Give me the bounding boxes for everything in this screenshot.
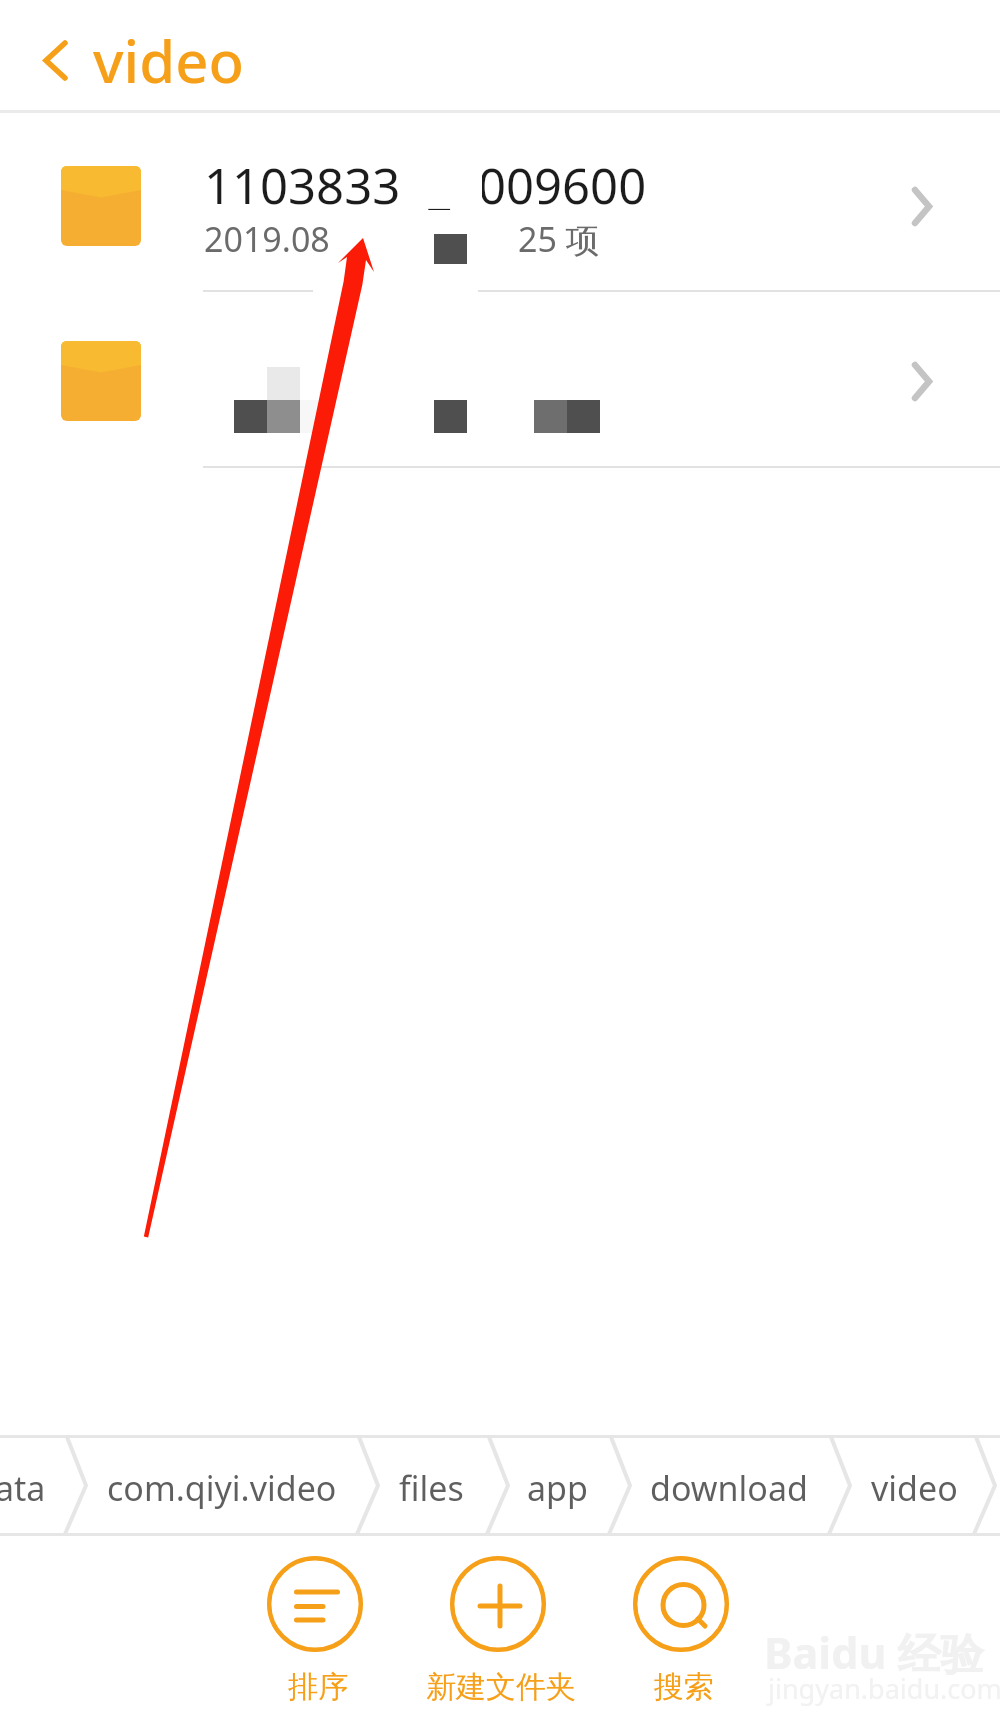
other: Back: [43, 40, 68, 81]
staticText: 排序: [288, 1668, 348, 1706]
staticText: jingyan.baidu.com: [768, 1670, 1000, 1707]
button[interactable]: 排序: [215, 1545, 415, 1706]
button[interactable]: [0, 113, 1000, 292]
staticText: 2019.08.: [204, 216, 339, 262]
button[interactable]: 新建文件夹: [398, 1545, 598, 1706]
button[interactable]: files: [358, 1435, 508, 1536]
button[interactable]: Back: [0, 0, 1000, 112]
staticText: files: [399, 1465, 464, 1511]
other: Open folder: [911, 186, 941, 227]
staticText: 搜索: [654, 1668, 714, 1706]
staticText: 新建文件夹: [426, 1668, 576, 1706]
staticText: ata: [0, 1465, 46, 1511]
staticText: com.qiyi.video: [107, 1465, 337, 1511]
button[interactable]: app: [488, 1435, 630, 1536]
staticText: video: [93, 21, 244, 100]
staticText: 25 项: [518, 216, 600, 262]
staticText: Baidu 经验: [764, 1623, 984, 1682]
staticText: app: [527, 1465, 588, 1511]
button[interactable]: download: [610, 1435, 850, 1536]
button[interactable]: 搜索: [581, 1545, 781, 1706]
staticText: download: [650, 1465, 808, 1511]
button[interactable]: ata: [0, 1435, 86, 1536]
button[interactable]: [0, 292, 1000, 469]
button[interactable]: com.qiyi.video: [66, 1435, 378, 1536]
button[interactable]: video: [830, 1435, 995, 1536]
staticText: video: [871, 1465, 958, 1511]
other: Open folder: [911, 361, 941, 402]
staticText: 11038330_4009600: [204, 152, 647, 219]
